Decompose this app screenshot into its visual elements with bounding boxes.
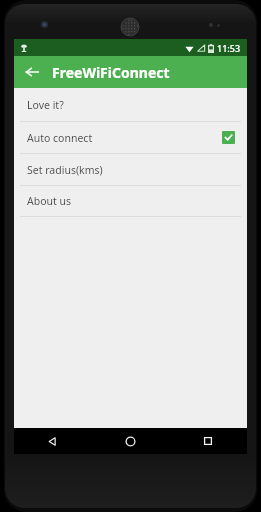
button[interactable]: Home [91, 428, 169, 454]
button[interactable]: Back [14, 428, 91, 454]
staticText: 11:53 [217, 42, 241, 54]
staticText: Set radius(kms) [27, 163, 235, 177]
button[interactable]: Recent apps [169, 428, 247, 454]
staticText: FreeWiFiConnect [52, 63, 170, 82]
button[interactable]: Love it? [14, 89, 247, 121]
button[interactable]: Auto connect [14, 122, 247, 153]
button[interactable]: Navigate up [20, 60, 44, 84]
staticText: Love it? [27, 98, 235, 112]
staticText: Auto connect [27, 131, 222, 145]
button[interactable]: Set radius(kms) [14, 154, 247, 185]
button[interactable]: Auto connect enabled [222, 131, 235, 144]
button[interactable]: About us [14, 186, 247, 216]
staticText: About us [27, 194, 235, 208]
